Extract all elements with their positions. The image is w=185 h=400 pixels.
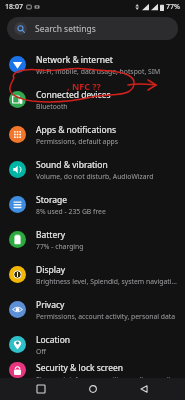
staticText: 18:07 bbox=[5, 2, 23, 12]
button[interactable]: Battery bbox=[0, 222, 185, 257]
button[interactable]: Search settings bbox=[7, 17, 178, 40]
button[interactable]: Security & lock screen bbox=[0, 362, 185, 378]
staticText: Permissions, account activity, personal … bbox=[36, 312, 176, 321]
button[interactable]: Location bbox=[0, 327, 185, 362]
staticText: , NFC ?? bbox=[67, 80, 101, 92]
staticText: Security & lock screen bbox=[36, 362, 124, 374]
staticText: Fingerprint, face recognition, wallpaper… bbox=[36, 375, 177, 378]
staticText: Battery bbox=[36, 229, 66, 241]
staticText: Off bbox=[36, 347, 46, 356]
button[interactable]: Apps & notifications bbox=[0, 117, 185, 152]
staticText: Privacy bbox=[36, 299, 65, 311]
button[interactable]: Home bbox=[82, 378, 104, 400]
staticText: Display bbox=[36, 264, 65, 276]
staticText: Location bbox=[36, 334, 71, 346]
staticText: 77% - charging bbox=[36, 242, 84, 251]
staticText: Bluetooth bbox=[36, 102, 68, 111]
staticText: Connected devices bbox=[36, 89, 111, 101]
button[interactable]: Back bbox=[133, 378, 155, 400]
button[interactable]: Display bbox=[0, 257, 185, 292]
staticText: Permissions, default apps bbox=[36, 137, 119, 146]
staticText: Network & internet bbox=[36, 54, 113, 66]
staticText: 77% bbox=[166, 2, 180, 12]
staticText: Volume, do not disturb, AudioWizard bbox=[36, 172, 154, 181]
button[interactable]: Sound & vibration bbox=[0, 152, 185, 187]
button[interactable]: Recents bbox=[30, 378, 52, 400]
staticText: Sound & vibration bbox=[36, 159, 108, 171]
staticText: Search settings bbox=[35, 23, 96, 35]
staticText: Brightness level, Splendid, system navig… bbox=[36, 277, 177, 286]
staticText: 8% used - 235 GB free bbox=[36, 207, 106, 216]
staticText: Wi-Fi, mobile, data usage, hotspot, SIM bbox=[36, 67, 161, 76]
button[interactable]: Storage bbox=[0, 187, 185, 222]
button[interactable]: Privacy bbox=[0, 292, 185, 327]
button[interactable]: Connected devices bbox=[0, 82, 185, 117]
staticText: Storage bbox=[36, 194, 68, 206]
button[interactable]: Network & internet bbox=[0, 47, 185, 82]
staticText: Apps & notifications bbox=[36, 124, 116, 136]
